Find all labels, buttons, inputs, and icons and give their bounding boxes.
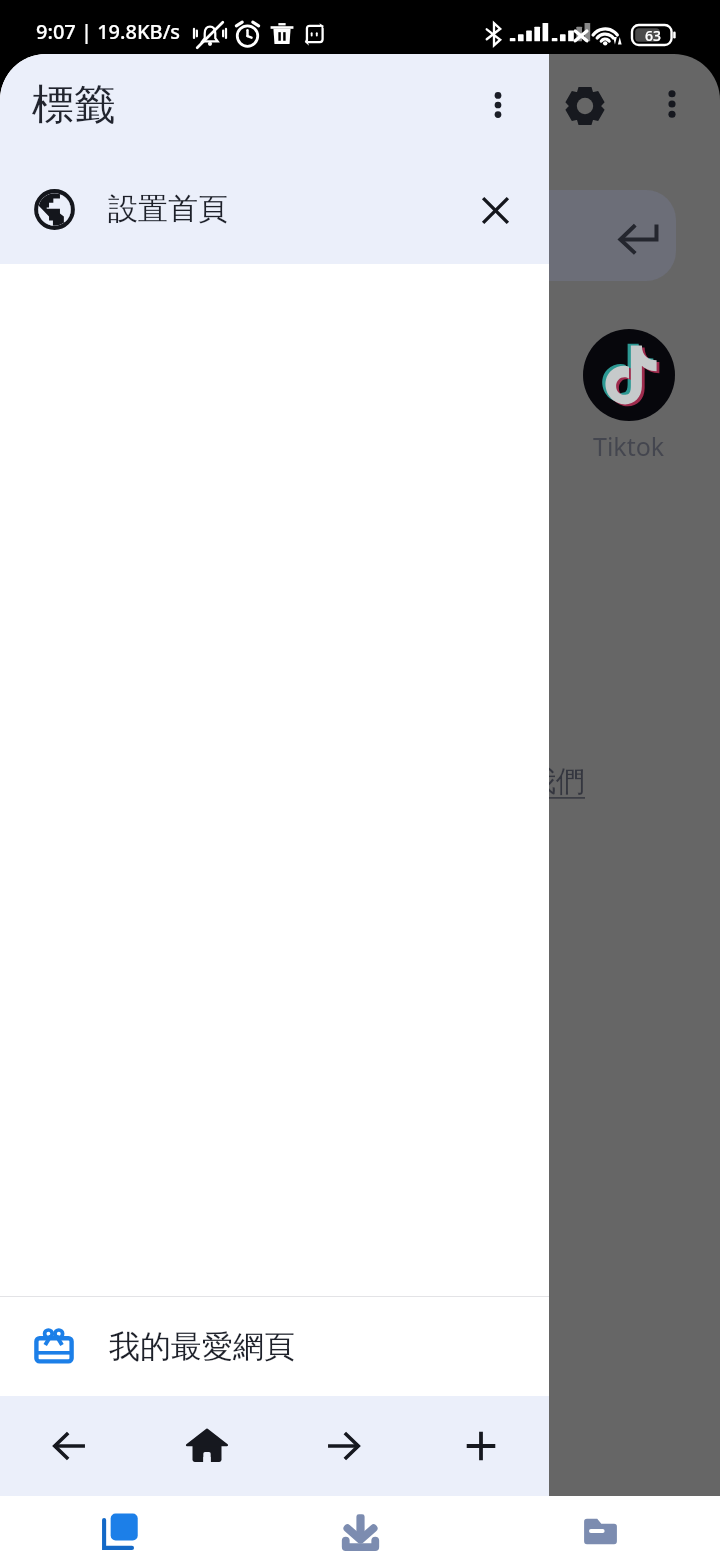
button[interactable]: Tiktok — [568, 324, 690, 450]
button[interactable]: New tab — [412, 1396, 549, 1496]
staticText: 我的最愛網頁 — [109, 1327, 295, 1366]
button[interactable]: 我的最愛網頁 — [0, 1297, 549, 1396]
button[interactable]: Downloads — [240, 1496, 480, 1556]
button[interactable]: Return — [436, 190, 676, 281]
staticText: 9:07 | 19.8KB/s — [36, 18, 181, 45]
staticText: 63 — [645, 26, 662, 45]
button[interactable]: Close tab — [460, 175, 530, 245]
button[interactable]: More options — [642, 74, 702, 134]
button[interactable]: Tabs — [0, 1496, 240, 1556]
button[interactable]: Settings — [553, 74, 617, 138]
button[interactable]: Home — [138, 1396, 275, 1496]
button[interactable]: 設置首頁 — [0, 162, 549, 258]
button[interactable]: Back — [0, 1396, 138, 1496]
staticText: 我們 — [527, 763, 585, 800]
staticText: Tiktok — [593, 429, 665, 463]
staticText: 標籤 — [32, 79, 116, 132]
staticText: 設置首頁 — [108, 190, 228, 228]
button[interactable]: Folders — [480, 1496, 720, 1556]
button[interactable]: Forward — [275, 1396, 412, 1496]
button[interactable]: More options — [460, 67, 536, 143]
